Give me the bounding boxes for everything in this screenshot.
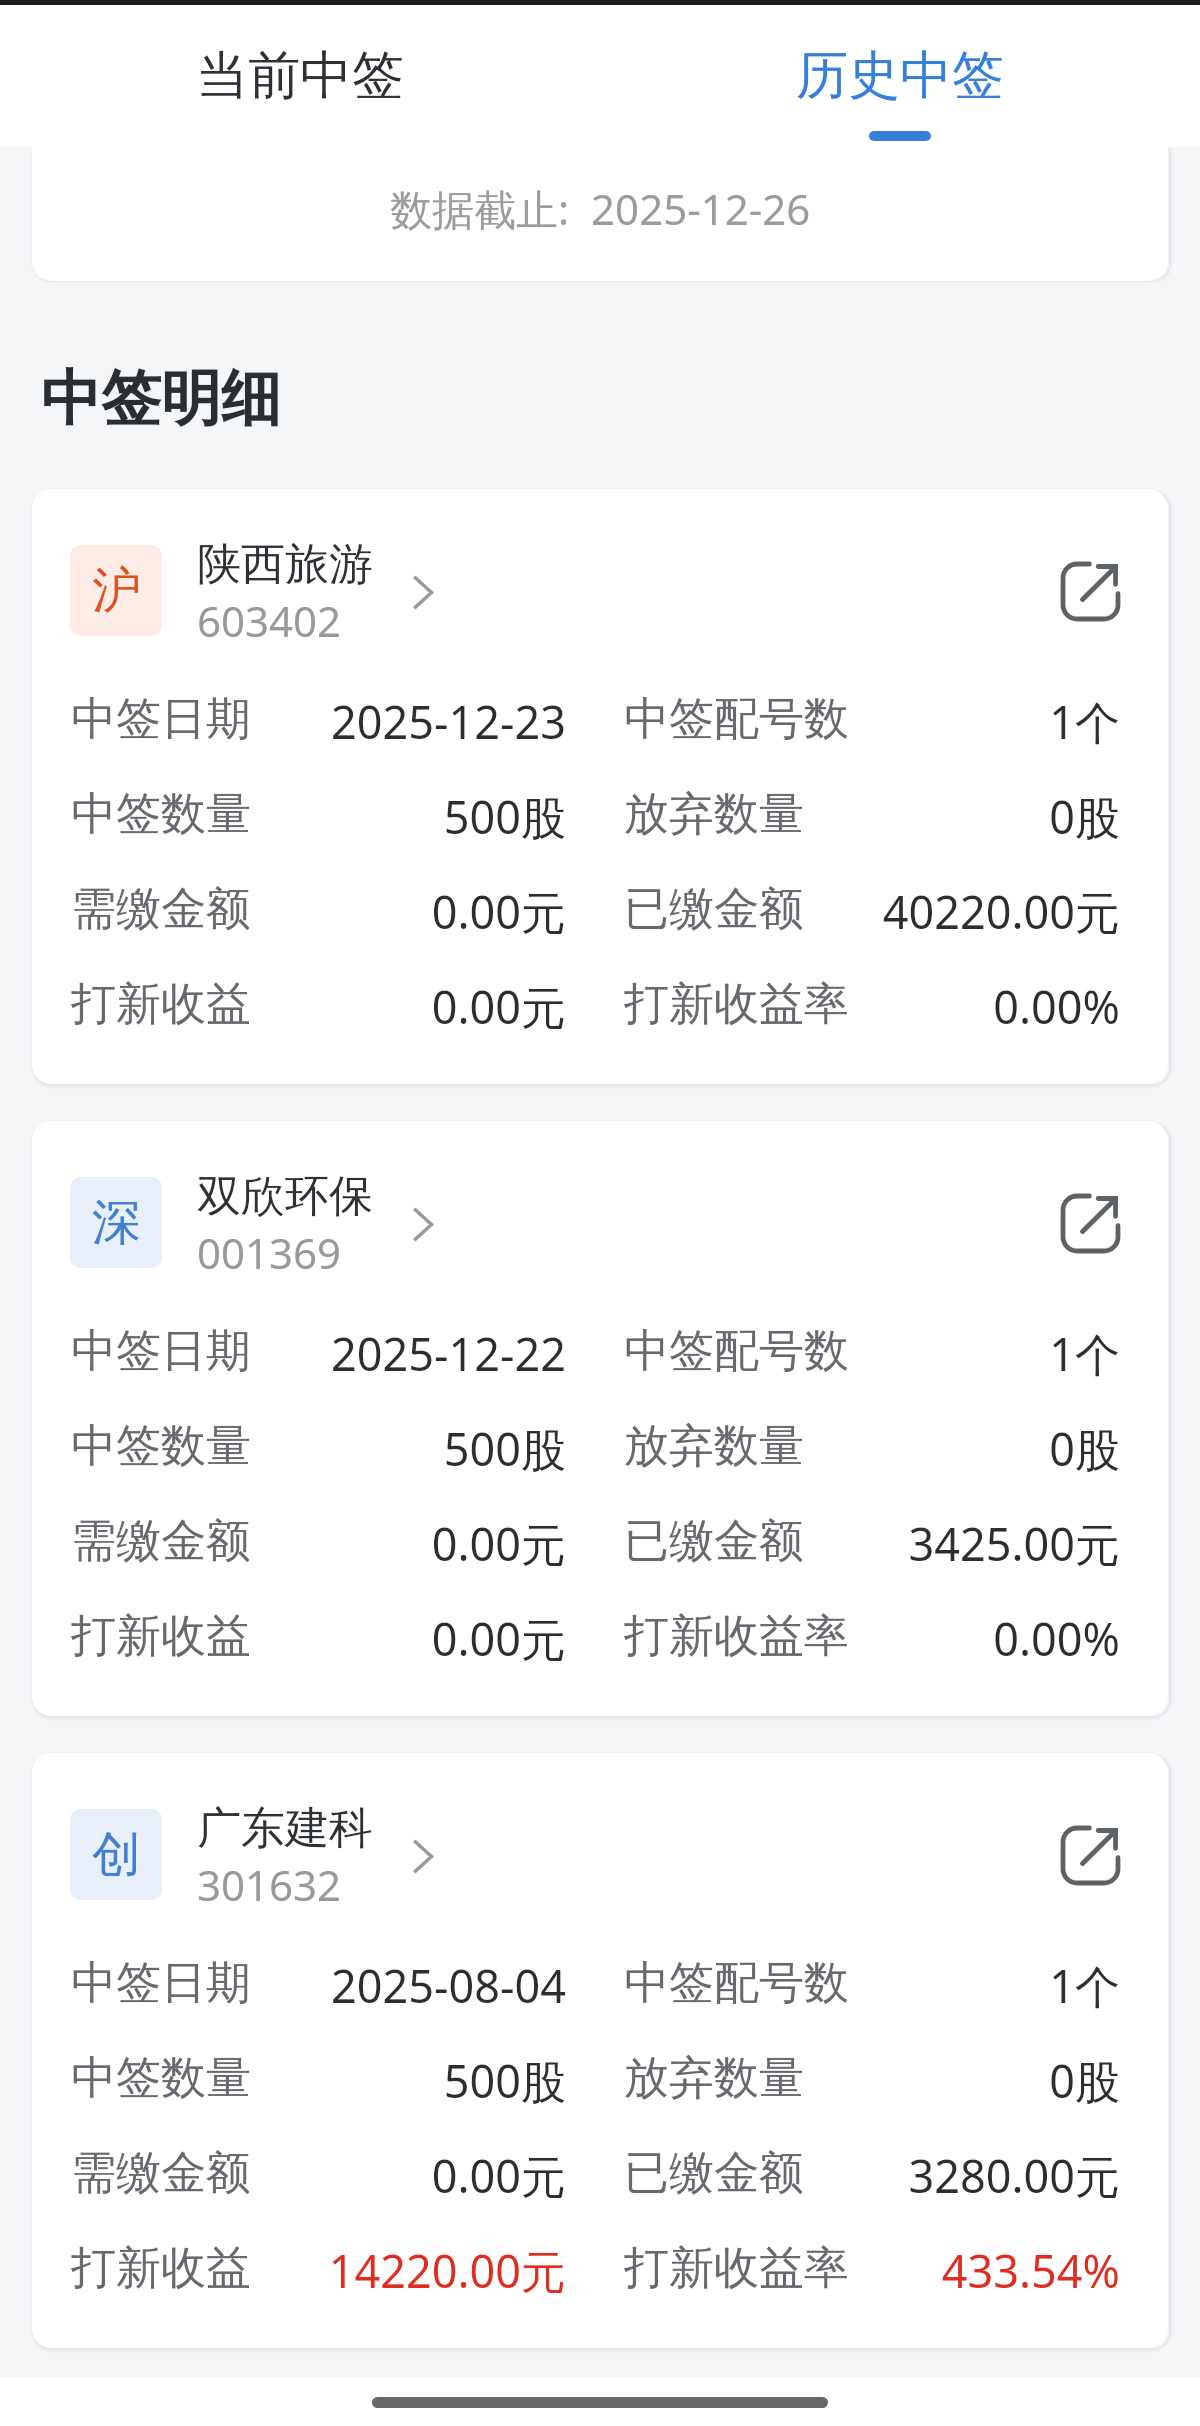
staticText: 0.00元 [251, 1513, 566, 1574]
button[interactable]: Open stock detail in new window [1048, 549, 1132, 633]
staticText: 0股 [804, 786, 1120, 847]
staticText: 放弃数量 [624, 786, 804, 843]
staticText: 中签数量 [71, 786, 251, 843]
staticText: 0.00元 [251, 881, 566, 942]
staticText: 1个 [849, 1323, 1120, 1384]
staticText: 已缴金额 [624, 881, 804, 938]
staticText: 0股 [804, 2050, 1120, 2111]
staticText: 广东建科 [197, 1801, 373, 1856]
staticText: 中签日期 [71, 1323, 251, 1380]
staticText: 打新收益 [71, 2240, 251, 2297]
button[interactable]: 沪 [70, 537, 434, 649]
staticText: 中签配号数 [624, 1323, 849, 1380]
button[interactable]: Open stock detail in new window [1048, 1813, 1132, 1897]
staticText: 603402 [197, 592, 342, 649]
staticText: 0.00元 [251, 2145, 566, 2206]
staticText: 打新收益 [71, 976, 251, 1033]
staticText: 打新收益率 [624, 1608, 849, 1665]
staticText: 需缴金额 [71, 881, 251, 938]
staticText: 创 [92, 1824, 141, 1886]
staticText: 1个 [849, 691, 1120, 752]
staticText: 深 [92, 1192, 141, 1254]
button[interactable]: 创 [32, 1753, 1168, 2348]
staticText: 2025-12-23 [251, 691, 566, 752]
button[interactable]: 沪 [32, 489, 1168, 1084]
staticText: 需缴金额 [71, 2145, 251, 2202]
staticText: 433.54% [849, 2240, 1120, 2301]
staticText: 2025-12-22 [251, 1323, 566, 1384]
staticText: 中签日期 [71, 691, 251, 748]
staticText: 中签日期 [71, 1955, 251, 2012]
staticText: 中签配号数 [624, 691, 849, 748]
staticText: 中签数量 [71, 1418, 251, 1475]
staticText: 已缴金额 [624, 1513, 804, 1570]
staticText: 001369 [197, 1224, 342, 1281]
staticText: 301632 [197, 1856, 342, 1913]
staticText: 1个 [849, 1955, 1120, 2016]
staticText: 放弃数量 [624, 1418, 804, 1475]
staticText: 500股 [251, 786, 566, 847]
staticText: 0股 [804, 1418, 1120, 1479]
staticText: 已缴金额 [624, 2145, 804, 2202]
staticText: 500股 [251, 2050, 566, 2111]
staticText: 历史中签 [796, 43, 1004, 109]
staticText: 数据截止: 2025-12-26 [390, 180, 811, 237]
staticText: 0.00% [849, 1608, 1120, 1669]
staticText: 沪 [92, 560, 141, 622]
staticText: 0.00% [849, 976, 1120, 1037]
button[interactable]: 创 [70, 1801, 434, 1913]
staticText: 0.00元 [251, 1608, 566, 1669]
staticText: 当前中签 [196, 43, 404, 109]
staticText: 14220.00元 [251, 2240, 566, 2301]
staticText: 中签数量 [71, 2050, 251, 2107]
staticText: 打新收益率 [624, 2240, 849, 2297]
staticText: 需缴金额 [71, 1513, 251, 1570]
staticText: 中签配号数 [624, 1955, 849, 2012]
button[interactable]: Open stock detail in new window [1048, 1181, 1132, 1265]
button[interactable]: 历史中签 [600, 5, 1200, 147]
staticText: 40220.00元 [804, 881, 1120, 942]
staticText: 打新收益率 [624, 976, 849, 1033]
button[interactable]: 深 [32, 1121, 1168, 1716]
staticText: 中签明细 [41, 361, 281, 437]
staticText: 打新收益 [71, 1608, 251, 1665]
staticText: 3280.00元 [804, 2145, 1120, 2206]
staticText: 3425.00元 [804, 1513, 1120, 1574]
button[interactable]: 深 [70, 1169, 434, 1281]
staticText: 0.00元 [251, 976, 566, 1037]
staticText: 2025-08-04 [251, 1955, 566, 2016]
staticText: 陕西旅游 [197, 537, 373, 592]
button[interactable]: 当前中签 [0, 5, 600, 147]
staticText: 500股 [251, 1418, 566, 1479]
staticText: 放弃数量 [624, 2050, 804, 2107]
staticText: 双欣环保 [197, 1169, 373, 1224]
